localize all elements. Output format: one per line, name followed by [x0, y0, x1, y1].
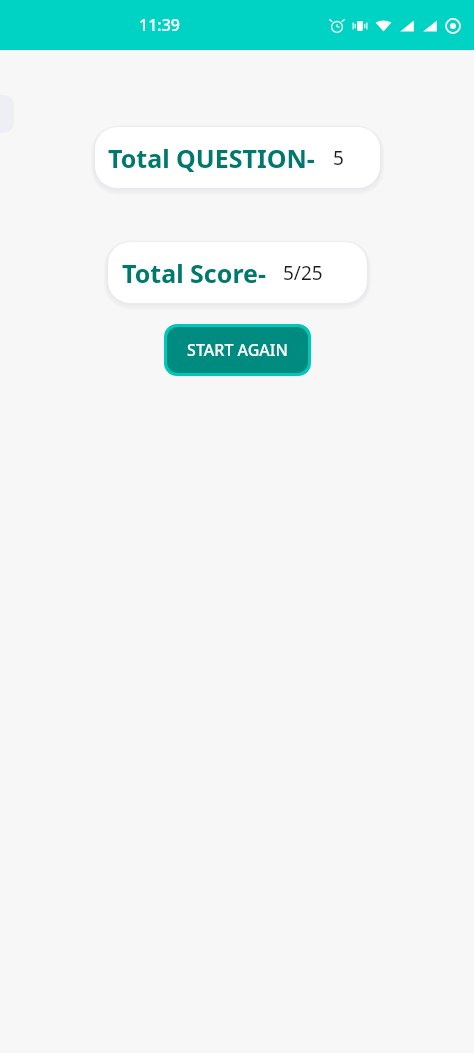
- staticText: 5: [333, 145, 344, 171]
- staticText: 5/25: [283, 260, 323, 286]
- button[interactable]: Total QUESTION-: [95, 127, 380, 188]
- staticText: Total QUESTION-: [108, 141, 315, 175]
- button[interactable]: Total Score-: [108, 242, 367, 303]
- staticText: 11:39: [139, 14, 180, 36]
- button[interactable]: START AGAIN: [167, 327, 308, 373]
- staticText: Total Score-: [122, 256, 266, 290]
- staticText: START AGAIN: [187, 339, 288, 361]
